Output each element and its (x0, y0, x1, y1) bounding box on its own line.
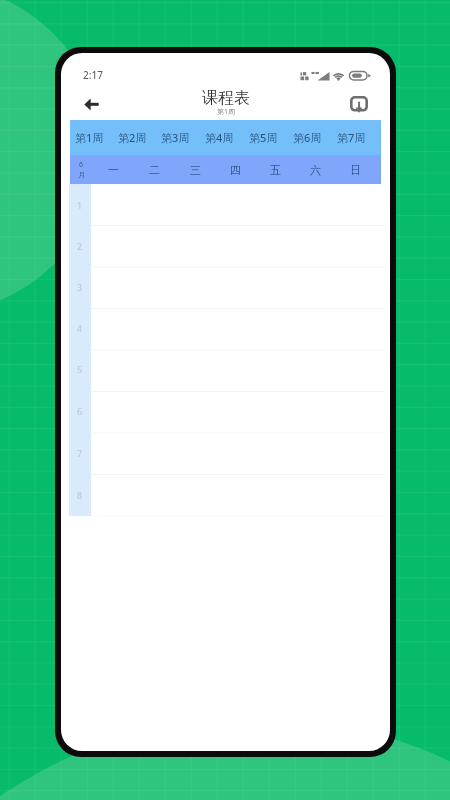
staticText: 2:17 (83, 68, 103, 82)
staticText: 7 (77, 447, 83, 459)
staticText: 8 (77, 489, 83, 501)
staticText: 第2周 (118, 130, 147, 145)
staticText: 6 (79, 160, 84, 170)
staticText: 第1周 (217, 107, 236, 117)
button[interactable]: 第2周 (111, 120, 154, 155)
staticText: 四 (230, 163, 241, 177)
staticText: 1 (77, 199, 83, 211)
button[interactable]: 第5周 (241, 120, 285, 155)
staticText: 5 (77, 363, 83, 375)
button[interactable]: Import schedule (346, 91, 372, 117)
staticText: 第3周 (161, 130, 190, 145)
staticText: 月 (78, 170, 85, 179)
staticText: 3 (77, 281, 83, 293)
staticText: 第5周 (249, 130, 278, 145)
staticText: 第1周 (75, 130, 104, 145)
staticText: 第7周 (337, 130, 366, 145)
staticText: 五 (270, 163, 281, 177)
staticText: 日 (350, 163, 361, 177)
button[interactable]: 第7周 (329, 120, 373, 155)
staticText: 二 (149, 163, 160, 177)
button[interactable]: 第1周 (68, 120, 111, 155)
button[interactable]: 第3周 (154, 120, 197, 155)
staticText: 2 (77, 240, 83, 252)
staticText: 第4周 (205, 130, 234, 145)
staticText: 六 (310, 163, 321, 177)
staticText: 6 (77, 405, 83, 417)
button[interactable]: Back (77, 90, 105, 118)
button[interactable]: 第4周 (197, 120, 241, 155)
staticText: 一 (108, 163, 119, 177)
staticText: 课程表 (202, 88, 250, 108)
button[interactable]: 第6周 (285, 120, 329, 155)
staticText: 第6周 (293, 130, 322, 145)
staticText: 4 (77, 322, 83, 334)
staticText: 三 (190, 163, 201, 177)
